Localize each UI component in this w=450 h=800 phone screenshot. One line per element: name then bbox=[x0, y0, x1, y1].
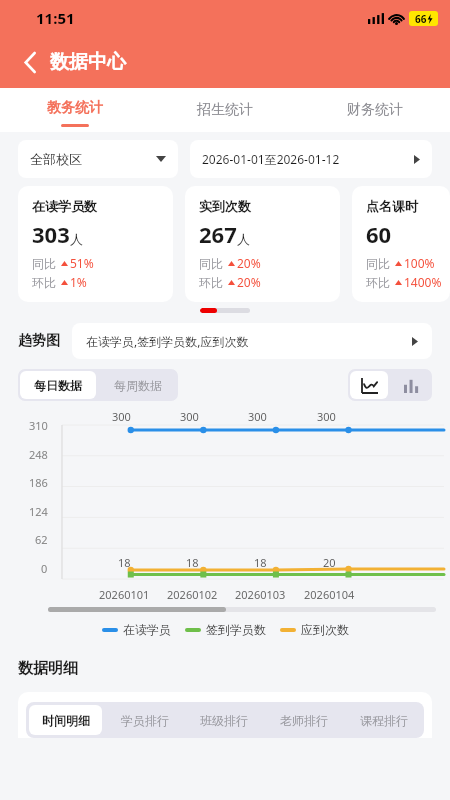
staticText: 2026-01-01至2026-01-12 bbox=[202, 151, 340, 167]
button[interactable]: 全部校区 bbox=[18, 140, 178, 178]
staticText: 267 bbox=[199, 219, 237, 249]
staticText: 11:51 bbox=[36, 8, 75, 28]
staticText: 20% bbox=[237, 255, 261, 271]
staticText: 20260102 bbox=[167, 587, 218, 602]
button[interactable]: 课程排行 bbox=[344, 702, 424, 738]
staticText: 20% bbox=[237, 274, 261, 290]
button[interactable]: Bar chart bbox=[390, 369, 432, 401]
staticText: 51% bbox=[70, 255, 94, 271]
staticText: 环比 bbox=[32, 275, 56, 290]
button[interactable]: 班级排行 bbox=[184, 702, 264, 738]
staticText: 248 bbox=[29, 447, 48, 462]
staticText: 环比 bbox=[366, 275, 390, 290]
staticText: 同比 bbox=[199, 256, 223, 271]
staticText: 300 bbox=[248, 409, 267, 424]
staticText: 人 bbox=[70, 231, 83, 247]
button[interactable]: 学员排行 bbox=[105, 702, 184, 738]
button[interactable]: 每周数据 bbox=[98, 369, 178, 401]
staticText: 20260104 bbox=[304, 587, 355, 602]
button[interactable]: 老师排行 bbox=[264, 702, 344, 738]
staticText: 趋势图 bbox=[18, 332, 60, 350]
staticText: 1400% bbox=[404, 274, 442, 290]
staticText: 0 bbox=[41, 561, 48, 576]
button[interactable]: 点名课时 bbox=[352, 186, 450, 302]
staticText: 人 bbox=[237, 231, 250, 247]
staticText: 在读学员,签到学员数,应到次数 bbox=[86, 333, 249, 349]
staticText: 60 bbox=[366, 219, 392, 249]
staticText: 62 bbox=[35, 532, 48, 547]
staticText: 310 bbox=[29, 418, 48, 433]
button[interactable]: 财务统计 bbox=[300, 88, 450, 132]
staticText: 课程排行 bbox=[360, 713, 408, 728]
button[interactable]: Back bbox=[16, 48, 44, 76]
button[interactable]: 每日数据 bbox=[20, 371, 96, 399]
staticText: 186 bbox=[29, 475, 48, 490]
button[interactable]: 时间明细 bbox=[29, 705, 102, 735]
staticText: 100% bbox=[404, 255, 435, 271]
staticText: 300 bbox=[180, 409, 199, 424]
staticText: 班级排行 bbox=[200, 713, 248, 728]
staticText: 点名课时 bbox=[366, 198, 418, 214]
staticText: 应到次数 bbox=[301, 622, 349, 637]
staticText: 20260101 bbox=[99, 587, 150, 602]
button[interactable]: 在读学员,签到学员数,应到次数 bbox=[72, 323, 432, 359]
staticText: 实到次数 bbox=[199, 198, 251, 214]
staticText: 时间明细 bbox=[42, 713, 90, 728]
staticText: 招生统计 bbox=[197, 101, 253, 119]
staticText: 18 bbox=[118, 555, 131, 570]
staticText: 300 bbox=[317, 409, 336, 424]
button[interactable]: 教务统计 bbox=[0, 88, 150, 132]
staticText: 66 bbox=[415, 12, 427, 26]
staticText: 数据明细 bbox=[18, 659, 78, 678]
staticText: 同比 bbox=[32, 256, 56, 271]
staticText: 20 bbox=[323, 555, 336, 570]
staticText: 303 bbox=[32, 219, 70, 249]
staticText: 18 bbox=[186, 555, 199, 570]
staticText: 同比 bbox=[366, 256, 390, 271]
staticText: 全部校区 bbox=[30, 151, 82, 167]
staticText: 300 bbox=[112, 409, 131, 424]
staticText: 环比 bbox=[199, 275, 223, 290]
staticText: 在读学员 bbox=[123, 622, 171, 637]
staticText: 1% bbox=[70, 274, 87, 290]
button[interactable]: 招生统计 bbox=[150, 88, 300, 132]
staticText: 学员排行 bbox=[121, 713, 169, 728]
staticText: 数据中心 bbox=[50, 50, 126, 74]
staticText: 签到学员数 bbox=[206, 622, 266, 637]
staticText: 财务统计 bbox=[347, 101, 403, 119]
staticText: 124 bbox=[29, 504, 48, 519]
staticText: 20260103 bbox=[235, 587, 286, 602]
button[interactable]: Line chart bbox=[350, 371, 388, 399]
staticText: 在读学员数 bbox=[32, 198, 97, 214]
button[interactable]: 2026-01-01至2026-01-12 bbox=[190, 140, 432, 178]
button[interactable]: 在读学员数 bbox=[18, 186, 173, 302]
staticText: 18 bbox=[254, 555, 267, 570]
staticText: 老师排行 bbox=[280, 713, 328, 728]
staticText: 每周数据 bbox=[114, 378, 162, 393]
staticText: 每日数据 bbox=[34, 378, 82, 393]
button[interactable]: 实到次数 bbox=[185, 186, 340, 302]
staticText: 教务统计 bbox=[47, 99, 103, 117]
